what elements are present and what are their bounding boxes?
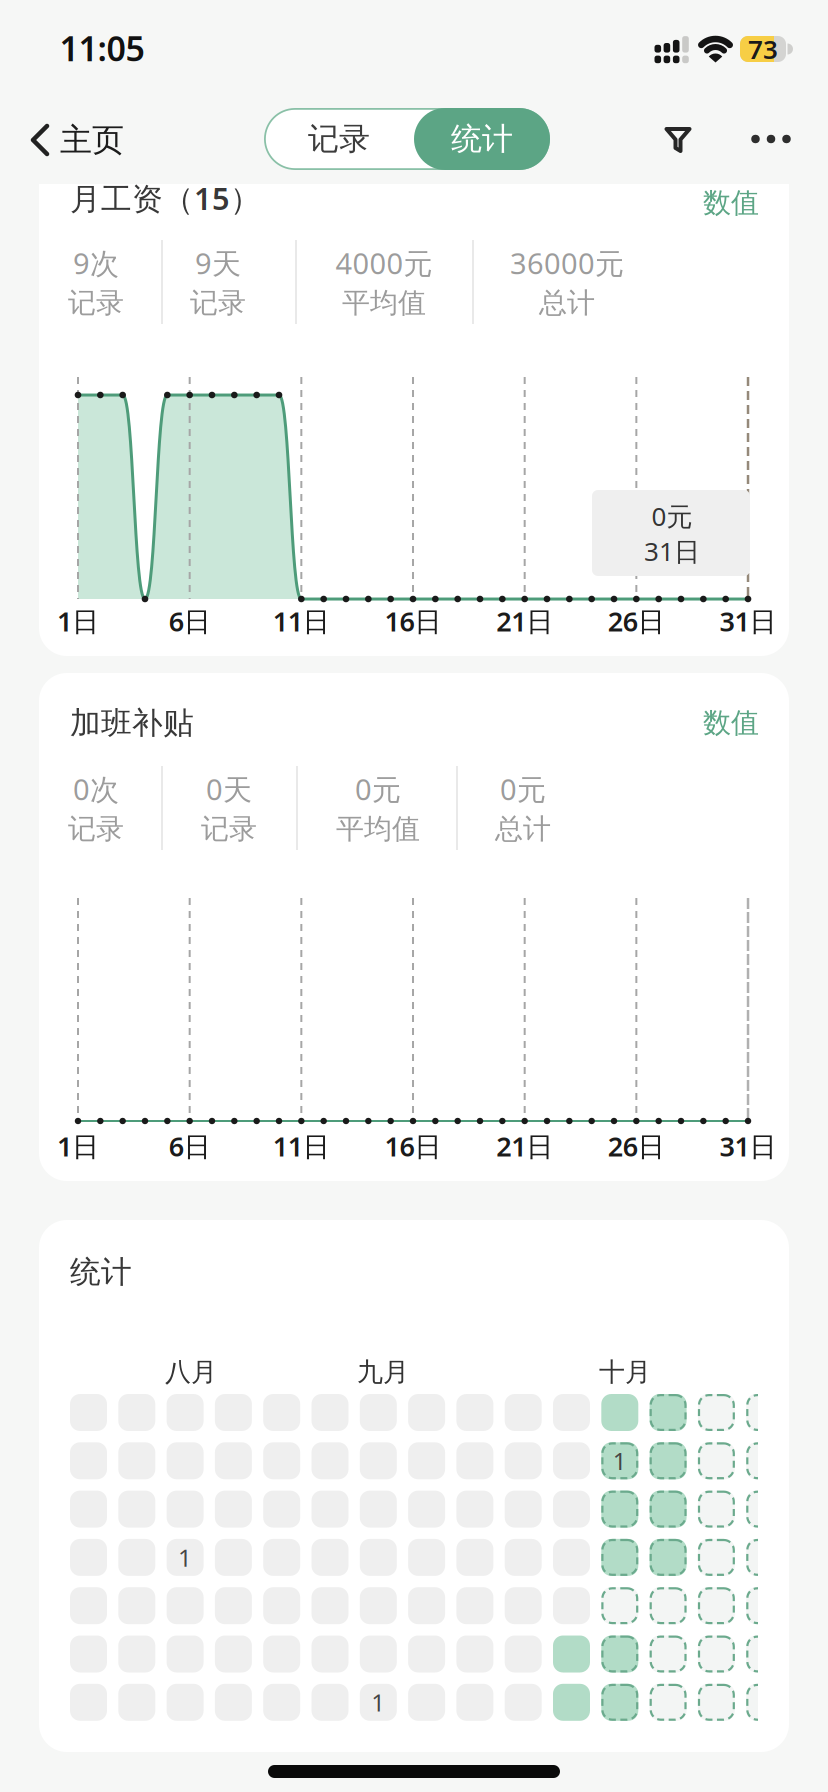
staticText: 31日 — [719, 1128, 776, 1164]
button[interactable]: More — [751, 135, 791, 143]
staticText: 统计 — [70, 1253, 132, 1291]
button[interactable]: 数值 — [703, 706, 759, 740]
button[interactable]: Filter — [664, 126, 692, 153]
staticText: 1日 — [57, 1128, 99, 1164]
staticText: 平均值 — [342, 286, 426, 320]
button[interactable]: 统计 — [414, 108, 550, 170]
staticText: 16日 — [384, 1128, 441, 1164]
button[interactable]: 记录 — [264, 108, 414, 170]
staticText: 记录 — [68, 286, 124, 320]
staticText: 26日 — [608, 603, 665, 639]
staticText: 1 — [178, 1541, 192, 1573]
button[interactable]: 主页 — [30, 120, 124, 160]
staticText: 36000元 — [510, 244, 624, 282]
staticText: 11日 — [273, 603, 330, 639]
staticText: 1日 — [57, 603, 99, 639]
staticText: 1 — [613, 1445, 627, 1477]
staticText: 0次 — [73, 770, 119, 808]
staticText: 记录 — [190, 286, 246, 320]
staticText: 平均值 — [336, 812, 420, 846]
staticText: 主页 — [60, 120, 124, 160]
staticText: 统计 — [451, 120, 513, 158]
staticText: 0天 — [206, 770, 252, 808]
staticText: 0元 — [355, 770, 401, 808]
staticText: 十月 — [599, 1356, 651, 1388]
staticText: 1 — [371, 1686, 385, 1718]
staticText: 加班补贴 — [70, 704, 194, 742]
staticText: 31日 — [644, 534, 700, 568]
staticText: 6日 — [169, 603, 211, 639]
staticText: 6日 — [169, 1128, 211, 1164]
staticText: 4000元 — [335, 244, 432, 282]
staticText: 0元 — [500, 770, 546, 808]
staticText: 31日 — [719, 603, 776, 639]
button[interactable]: 数值 — [703, 186, 759, 220]
staticText: 记录 — [201, 812, 257, 846]
staticText: 9天 — [195, 244, 241, 282]
staticText: 73 — [748, 32, 778, 66]
staticText: 记录 — [308, 120, 370, 158]
staticText: 16日 — [384, 603, 441, 639]
staticText: 11日 — [273, 1128, 330, 1164]
staticText: 0元 — [651, 499, 692, 533]
staticText: 八月 — [165, 1356, 217, 1388]
staticText: 九月 — [357, 1356, 409, 1388]
staticText: 数值 — [703, 186, 759, 220]
staticText: 总计 — [539, 286, 595, 320]
staticText: 21日 — [496, 603, 553, 639]
staticText: 总计 — [495, 812, 551, 846]
staticText: 9次 — [73, 244, 119, 282]
staticText: 月工资（15） — [70, 178, 261, 218]
staticText: 26日 — [608, 1128, 665, 1164]
staticText: 21日 — [496, 1128, 553, 1164]
staticText: 11:05 — [59, 25, 144, 71]
staticText: 记录 — [68, 812, 124, 846]
staticText: 数值 — [703, 706, 759, 740]
